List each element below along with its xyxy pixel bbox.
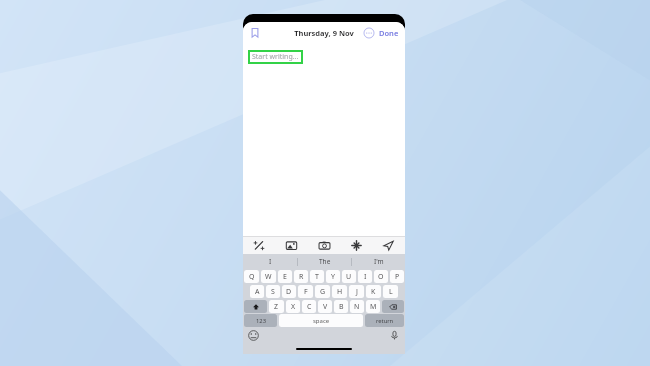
button[interactable]: More options xyxy=(362,26,376,40)
button[interactable]: V xyxy=(318,300,332,313)
button[interactable]: M xyxy=(366,300,380,313)
button[interactable]: space xyxy=(279,314,363,327)
staticText: N xyxy=(354,302,360,312)
button[interactable]: 123 xyxy=(244,314,277,327)
button[interactable]: Camera xyxy=(318,239,331,252)
staticText: M xyxy=(370,302,377,312)
button[interactable]: Y xyxy=(326,270,340,283)
staticText: W xyxy=(265,272,272,282)
staticText: H xyxy=(337,287,343,297)
button[interactable]: K xyxy=(366,285,381,298)
staticText: S xyxy=(271,287,275,297)
staticText: P xyxy=(395,272,400,282)
staticText: I xyxy=(269,257,272,266)
staticText: A xyxy=(255,287,260,297)
staticText: O xyxy=(378,272,384,282)
button[interactable]: S xyxy=(266,285,280,298)
staticText: Start writing... xyxy=(252,52,299,62)
staticText: I'm xyxy=(374,257,384,266)
button[interactable]: F xyxy=(298,285,313,298)
staticText: T xyxy=(315,272,319,282)
staticText: C xyxy=(307,302,312,312)
button[interactable]: Done xyxy=(376,26,402,40)
staticText: L xyxy=(389,287,393,297)
button[interactable]: The xyxy=(298,254,351,269)
button[interactable]: I xyxy=(243,254,297,269)
staticText: J xyxy=(356,287,358,297)
button[interactable]: Markup xyxy=(253,239,266,252)
button[interactable]: Dictate xyxy=(389,330,400,341)
button[interactable]: Scan xyxy=(350,239,363,252)
button[interactable]: D xyxy=(282,285,296,298)
staticText: Z xyxy=(274,302,279,312)
button[interactable]: G xyxy=(315,285,330,298)
button[interactable]: Send xyxy=(382,239,395,252)
button[interactable]: Q xyxy=(244,270,259,283)
staticText: R xyxy=(299,272,304,282)
button[interactable]: Shift xyxy=(244,300,267,313)
staticText: Done xyxy=(379,28,399,38)
staticText: V xyxy=(323,302,328,312)
button[interactable]: Photos xyxy=(285,239,298,252)
button[interactable]: return xyxy=(365,314,404,327)
staticText: G xyxy=(320,287,326,297)
staticText: U xyxy=(346,272,352,282)
button[interactable]: Bookmark xyxy=(247,25,263,41)
staticText: return xyxy=(376,317,394,325)
button[interactable]: R xyxy=(294,270,308,283)
staticText: space xyxy=(313,317,330,325)
staticText: E xyxy=(283,272,287,282)
staticText: X xyxy=(291,302,296,312)
staticText: Y xyxy=(331,272,335,282)
button[interactable]: J xyxy=(349,285,364,298)
staticText: Q xyxy=(249,272,255,282)
button[interactable]: H xyxy=(332,285,347,298)
staticText: The xyxy=(319,257,331,266)
staticText: 123 xyxy=(256,317,266,325)
staticText: K xyxy=(371,287,376,297)
button[interactable]: Delete xyxy=(382,300,404,313)
button[interactable]: Z xyxy=(269,300,284,313)
button[interactable]: A xyxy=(250,285,264,298)
button[interactable]: E xyxy=(278,270,292,283)
button[interactable]: X xyxy=(286,300,300,313)
staticText: D xyxy=(286,287,292,297)
button[interactable]: W xyxy=(261,270,276,283)
staticText: B xyxy=(339,302,344,312)
button[interactable]: Emoji xyxy=(248,330,259,341)
button[interactable]: T xyxy=(310,270,324,283)
button[interactable]: L xyxy=(383,285,398,298)
staticText: Thursday, 9 Nov xyxy=(294,28,354,38)
button[interactable]: I xyxy=(358,270,372,283)
button[interactable]: N xyxy=(350,300,364,313)
button[interactable]: P xyxy=(390,270,404,283)
button[interactable]: I'm xyxy=(352,254,405,269)
staticText: F xyxy=(304,287,308,297)
button[interactable]: C xyxy=(302,300,316,313)
button[interactable]: O xyxy=(374,270,388,283)
staticText: I xyxy=(364,272,367,282)
button[interactable]: U xyxy=(342,270,356,283)
button[interactable]: B xyxy=(334,300,348,313)
